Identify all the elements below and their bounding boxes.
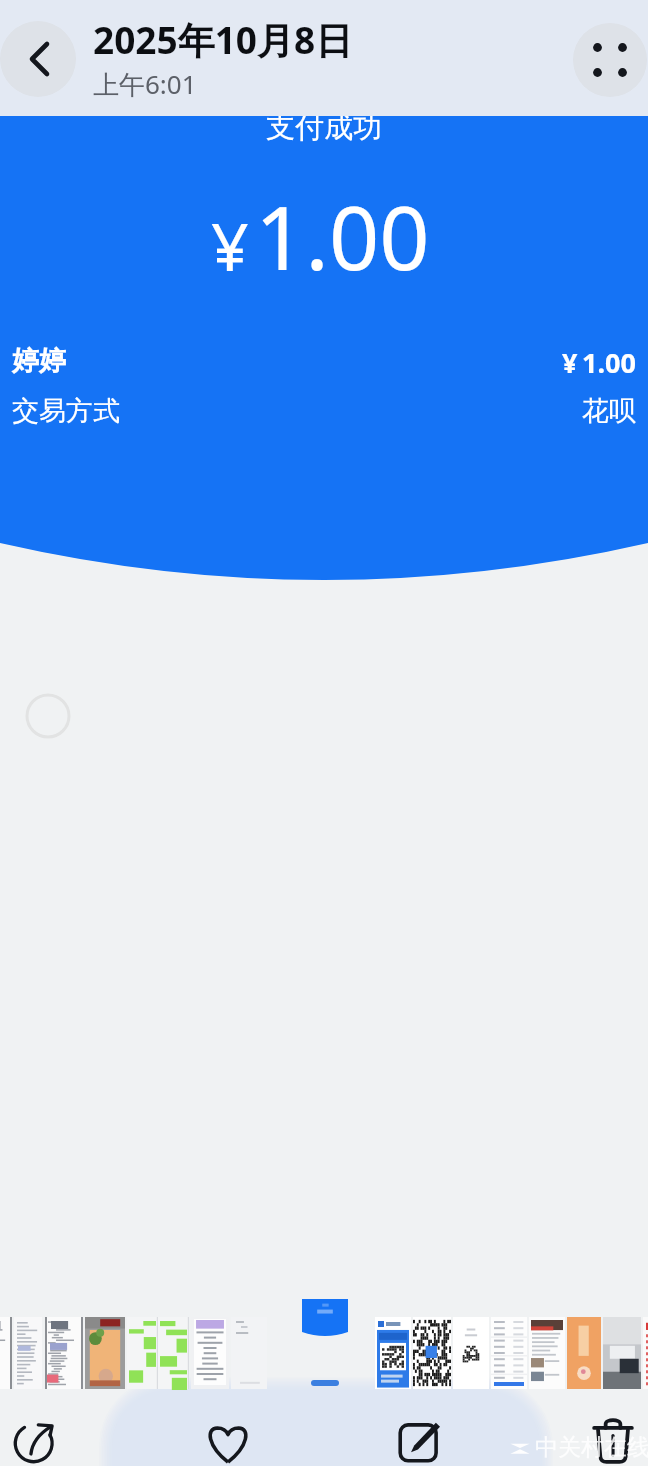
staticText: 1.00 [255,176,430,296]
staticText: 中关村在线 [535,1433,648,1462]
staticText: 交易方式 [12,394,120,428]
button[interactable]: Delete [569,1380,648,1466]
staticText: 上午6:01 [93,66,197,102]
staticText: 婷婷 [12,344,66,378]
button[interactable]: Back [0,21,76,97]
staticText: 2025年10月8日 [93,14,353,65]
button[interactable]: More options [573,23,647,97]
staticText: 花呗 [582,394,636,428]
staticText: 支付成功 [0,109,648,146]
staticText: ¥ 1.00 [562,344,636,381]
button[interactable]: Edit [376,1380,464,1466]
staticText: ¥ [211,200,249,290]
button[interactable]: Favorite [184,1380,272,1466]
button[interactable]: Share [0,1380,80,1466]
